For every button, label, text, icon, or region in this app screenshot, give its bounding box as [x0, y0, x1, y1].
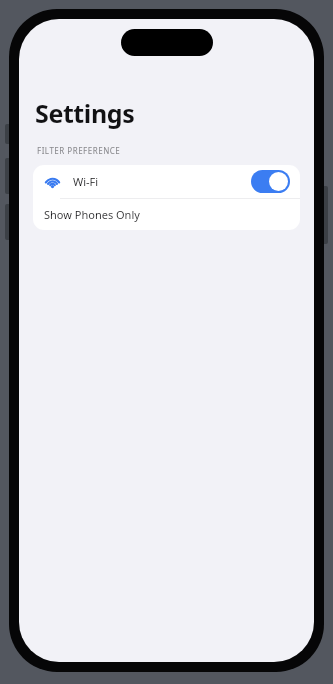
staticText: Settings	[35, 96, 135, 130]
button[interactable]: Wi-Fi toggle	[251, 170, 290, 193]
staticText: FILTER PREFERENCE	[37, 145, 121, 156]
staticText: Show Phones Only	[44, 207, 140, 222]
other: Wi-Fi	[44, 173, 61, 190]
other: Dynamic Island	[121, 29, 213, 56]
button[interactable]: Show Phones Only	[33, 199, 300, 230]
staticText: Wi-Fi	[73, 174, 99, 189]
button[interactable]: Wi-Fi	[33, 165, 300, 198]
